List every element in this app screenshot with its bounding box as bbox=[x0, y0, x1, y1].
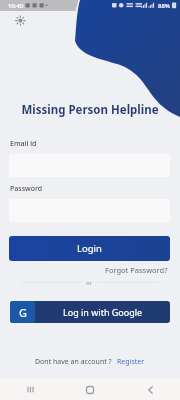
button[interactable]: G bbox=[10, 301, 170, 323]
button[interactable]: Forgot Password? bbox=[105, 265, 168, 275]
button[interactable]: Back bbox=[120, 379, 180, 400]
staticText: Login bbox=[77, 242, 102, 255]
button[interactable]: Login bbox=[9, 236, 170, 261]
staticText: 88% bbox=[158, 2, 170, 10]
staticText: Register bbox=[117, 357, 145, 367]
staticText: Dont have an account ? bbox=[35, 357, 112, 367]
button[interactable]: Recents bbox=[0, 379, 60, 400]
staticText: Email id bbox=[10, 139, 37, 149]
staticText: Password bbox=[10, 184, 43, 194]
staticText: 10:40 bbox=[8, 2, 24, 10]
staticText: Missing Person Helpline bbox=[0, 102, 180, 118]
button[interactable]: Home bbox=[60, 379, 120, 400]
staticText: Log in with Google bbox=[63, 306, 143, 318]
staticText: G bbox=[19, 305, 27, 320]
button[interactable]: Register bbox=[117, 357, 145, 367]
staticText: or bbox=[86, 279, 93, 286]
staticText: Forgot Password? bbox=[105, 265, 168, 275]
